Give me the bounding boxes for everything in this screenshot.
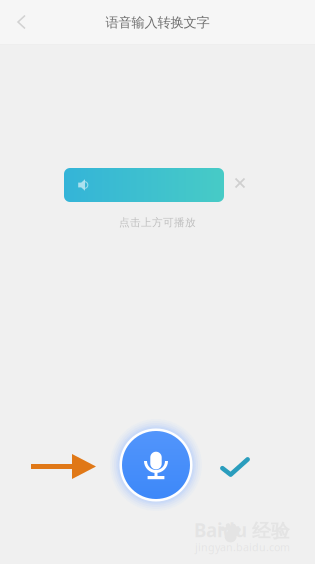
staticText: 点击上方可播放 [119,216,196,229]
button[interactable]: Delete recording [228,173,252,197]
button[interactable]: Confirm [213,445,257,489]
staticText: 语音输入转换文字 [105,14,209,31]
button[interactable]: Back [0,0,44,44]
staticText: jingyan.baidu.com [195,540,290,554]
button[interactable]: Record [110,419,202,511]
staticText: Baidu 经验 [194,518,290,542]
